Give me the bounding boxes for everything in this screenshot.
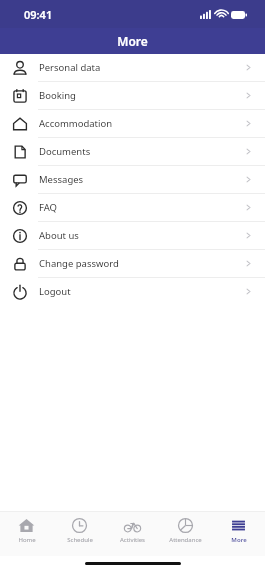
staticText: Home (18, 536, 36, 544)
button[interactable]: Activities (106, 512, 159, 556)
staticText: 09:41 (24, 7, 53, 22)
button[interactable]: Personal data (0, 54, 265, 81)
button[interactable]: Logout (0, 278, 265, 305)
button[interactable]: FAQ (0, 194, 265, 221)
button[interactable]: Accommodation (0, 110, 265, 137)
staticText: Schedule (67, 536, 93, 544)
staticText: Logout (39, 285, 244, 298)
button[interactable]: About us (0, 222, 265, 249)
button[interactable]: More (212, 512, 265, 556)
staticText: Activities (120, 536, 145, 544)
staticText: Booking (39, 89, 244, 102)
button[interactable]: Change password (0, 250, 265, 277)
staticText: More (231, 536, 247, 544)
staticText: Personal data (39, 61, 244, 74)
staticText: Attendance (169, 536, 202, 544)
staticText: Accommodation (39, 117, 244, 130)
staticText: FAQ (39, 201, 244, 214)
staticText: More (117, 33, 148, 49)
button[interactable]: Home (0, 512, 53, 556)
button[interactable]: Documents (0, 138, 265, 165)
button[interactable]: Schedule (53, 512, 106, 556)
staticText: Messages (39, 173, 244, 186)
staticText: Documents (39, 145, 244, 158)
staticText: Change password (39, 257, 244, 270)
button[interactable]: Booking (0, 82, 265, 109)
staticText: About us (39, 229, 244, 242)
button[interactable]: Attendance (159, 512, 212, 556)
button[interactable]: Messages (0, 166, 265, 193)
